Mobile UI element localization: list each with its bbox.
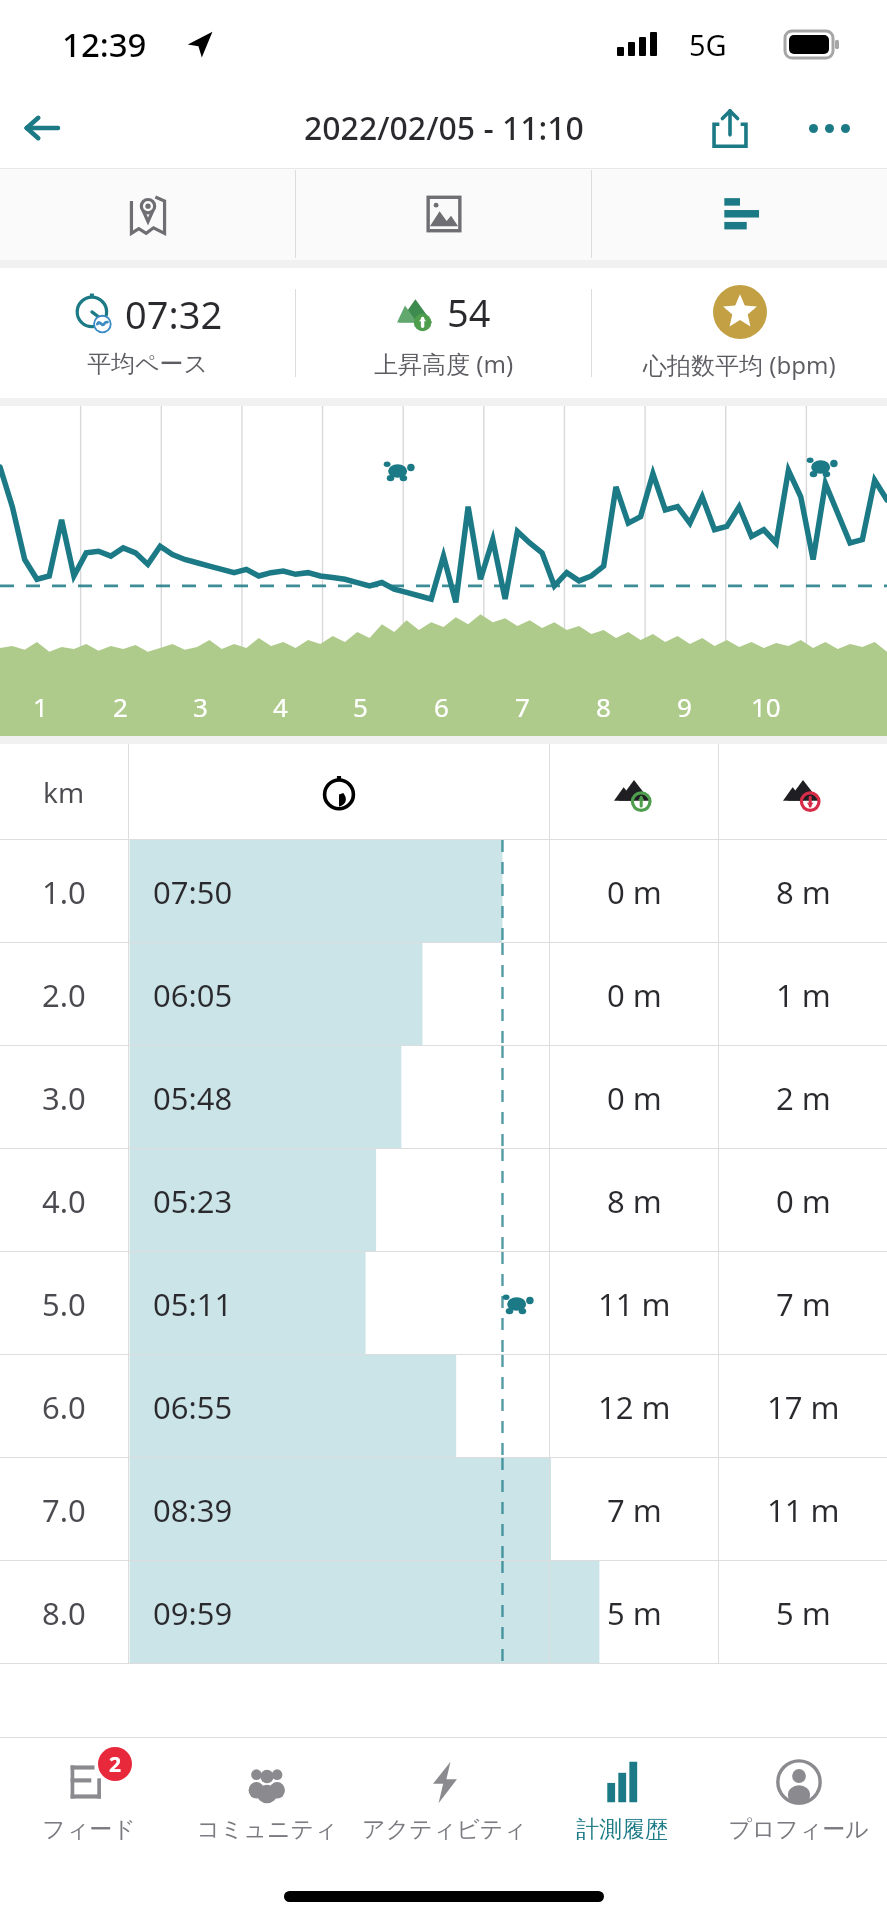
staticText: 54 xyxy=(447,286,491,338)
staticText: 心拍数平均 (bpm) xyxy=(643,348,836,381)
staticText: 平均ペース xyxy=(87,349,209,379)
staticText: 17 m xyxy=(767,1386,840,1428)
staticText: 0 m xyxy=(607,871,662,913)
button[interactable]: 1.0 xyxy=(0,840,887,943)
staticText: 05:48 xyxy=(153,1077,233,1119)
button[interactable]: 2.0 xyxy=(0,943,887,1046)
button[interactable]: Photos xyxy=(296,168,591,260)
button[interactable]: More options xyxy=(797,96,861,160)
button[interactable]: アクティビティ xyxy=(356,1738,533,1864)
staticText: 5 m xyxy=(776,1592,831,1634)
staticText: 7.0 xyxy=(42,1489,86,1531)
staticText: 06:05 xyxy=(153,974,233,1016)
staticText: 0 m xyxy=(607,974,662,1016)
staticText: 5 m xyxy=(607,1592,662,1634)
staticText: 2022/02/05 - 11:10 xyxy=(304,106,584,150)
staticText: 5G xyxy=(689,25,727,64)
button[interactable]: 計測履歴 xyxy=(533,1738,710,1864)
button[interactable]: コミュニティ xyxy=(178,1738,356,1864)
staticText: km xyxy=(43,773,85,811)
staticText: 5.0 xyxy=(42,1283,86,1325)
staticText: 3 xyxy=(193,689,208,724)
staticText: 05:23 xyxy=(153,1180,233,1222)
button[interactable]: 2 xyxy=(0,1738,178,1864)
staticText: 0 m xyxy=(776,1180,831,1222)
staticText: 11 m xyxy=(767,1489,840,1531)
staticText: 2.0 xyxy=(42,974,86,1016)
button[interactable]: 8.0 xyxy=(0,1561,887,1664)
staticText: 0 m xyxy=(607,1077,662,1119)
staticText: 07:50 xyxy=(153,871,233,913)
staticText: 10 xyxy=(751,689,781,724)
staticText: 8 m xyxy=(776,871,831,913)
staticText: 1.0 xyxy=(42,871,86,913)
staticText: 7 m xyxy=(607,1489,662,1531)
staticText: 5 xyxy=(353,689,368,724)
button[interactable]: プロフィール xyxy=(710,1738,887,1864)
staticText: 7 m xyxy=(776,1283,831,1325)
button[interactable]: Statistics xyxy=(592,168,887,260)
staticText: 8 m xyxy=(607,1180,662,1222)
button[interactable]: 6.0 xyxy=(0,1355,887,1458)
staticText: フィード xyxy=(42,1815,136,1844)
staticText: 2 xyxy=(109,1750,122,1779)
staticText: コミュニティ xyxy=(196,1815,338,1844)
staticText: 1 xyxy=(33,689,48,724)
button[interactable]: 3.0 xyxy=(0,1046,887,1149)
button[interactable]: 心拍数平均 (bpm) xyxy=(592,268,887,398)
staticText: 11 m xyxy=(598,1283,671,1325)
staticText: 1 m xyxy=(776,974,831,1016)
staticText: 計測履歴 xyxy=(576,1815,668,1844)
button[interactable]: Back xyxy=(10,97,72,159)
staticText: アクティビティ xyxy=(362,1815,527,1844)
staticText: 07:32 xyxy=(125,288,223,340)
staticText: 06:55 xyxy=(153,1386,233,1428)
button[interactable]: 4.0 xyxy=(0,1149,887,1252)
button[interactable]: 54 xyxy=(296,268,591,398)
staticText: 8.0 xyxy=(42,1592,86,1634)
staticText: 上昇高度 (m) xyxy=(374,347,514,380)
staticText: 2 m xyxy=(776,1077,831,1119)
staticText: 3.0 xyxy=(42,1077,86,1119)
staticText: 09:59 xyxy=(153,1592,233,1634)
staticText: 6 xyxy=(434,689,449,724)
staticText: 2 xyxy=(113,689,128,724)
staticText: 7 xyxy=(515,689,530,724)
button[interactable]: Map xyxy=(0,168,295,260)
staticText: 9 xyxy=(677,689,692,724)
staticText: プロフィール xyxy=(728,1815,869,1844)
button[interactable]: 5.0 xyxy=(0,1252,887,1355)
button[interactable]: Share xyxy=(698,96,762,160)
button[interactable]: 07:32 xyxy=(0,268,295,398)
button[interactable]: 7.0 xyxy=(0,1458,887,1561)
staticText: 05:11 xyxy=(153,1283,233,1325)
staticText: 08:39 xyxy=(153,1489,233,1531)
staticText: 4 xyxy=(273,689,288,724)
staticText: 12:39 xyxy=(62,22,147,67)
staticText: 4.0 xyxy=(42,1180,86,1222)
staticText: 8 xyxy=(596,689,611,724)
staticText: 12 m xyxy=(598,1386,671,1428)
staticText: 6.0 xyxy=(42,1386,86,1428)
